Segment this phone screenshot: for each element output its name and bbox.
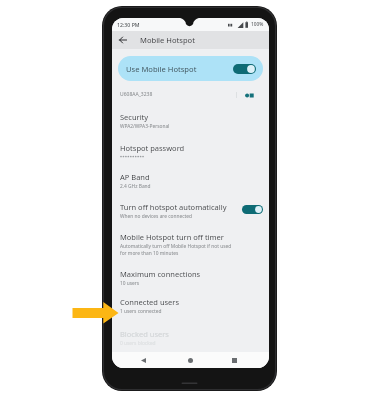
button[interactable]: Home [183,352,197,368]
staticText: Connected users [120,297,180,307]
staticText: AP Band [120,172,150,182]
button[interactable]: U608AA_3238 [112,91,269,103]
staticText: Mobile Hotspot [140,35,195,45]
button[interactable]: Share network QR code [244,90,254,100]
staticText: Maximum connections [120,269,201,279]
staticText: Blocked users [120,329,169,339]
staticText: 100% [251,21,264,28]
button[interactable]: Use Mobile Hotspot [118,56,263,81]
staticText: Turn off hotspot automatically [120,202,227,212]
staticText: Mobile Hotspot turn off timer [120,232,224,242]
staticText: 2.4 GHz Band [120,183,151,190]
staticText: U608AA_3238 [120,91,153,98]
staticText: Hotspot password [120,143,185,153]
button[interactable]: Mobile Hotspot turn off timer [112,232,269,256]
staticText: 10 users [120,280,140,287]
button[interactable]: Recent apps [227,352,241,368]
staticText: Security [120,112,149,122]
staticText: When no devices are connected [120,213,192,220]
button[interactable]: Turn off hotspot automatically [112,202,269,226]
staticText: Use Mobile Hotspot [126,64,197,74]
button[interactable]: Security [112,112,269,136]
staticText: 12:30 PM [117,21,140,28]
button[interactable]: AP Band [112,172,269,196]
button[interactable]: Hotspot password [112,143,269,167]
button[interactable]: Back [136,352,150,368]
staticText: WPA2/WPA3-Personal [120,123,170,130]
staticText: 0 users blocked [120,340,156,347]
staticText: 1 users connected [120,308,162,315]
staticText: Automatically turn off Mobile Hotspot if… [120,243,233,256]
button[interactable]: Back [112,31,134,49]
button[interactable]: Blocked users [112,329,269,353]
button[interactable]: Maximum connections [112,269,269,293]
button[interactable]: Connected users [112,297,269,321]
